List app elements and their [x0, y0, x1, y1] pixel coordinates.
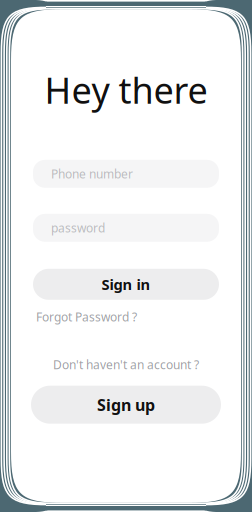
staticText: password	[51, 220, 105, 236]
staticText: Don't haven't an account ?	[53, 357, 199, 373]
staticText: Hey there	[44, 66, 207, 114]
button[interactable]: Sign in	[33, 269, 219, 300]
staticText: Phone number	[51, 166, 133, 182]
staticText: Forgot Password ?	[36, 309, 137, 325]
staticText: Sign up	[97, 394, 155, 415]
button[interactable]: Forgot Password ?	[30, 309, 222, 325]
staticText: Sign in	[101, 275, 150, 294]
button[interactable]: Sign up	[31, 386, 221, 424]
